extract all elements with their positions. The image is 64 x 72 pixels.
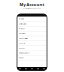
staticText: Devices bbox=[19, 47, 25, 49]
button[interactable]: Tab bbox=[17, 67, 23, 70]
button[interactable]: Security bbox=[17, 41, 47, 46]
staticText: About bbox=[19, 57, 23, 59]
button[interactable]: Tab bbox=[23, 67, 29, 70]
button[interactable]: About bbox=[17, 56, 47, 60]
button[interactable]: Profile bbox=[17, 17, 47, 22]
button[interactable]: Payment bbox=[17, 31, 47, 36]
button[interactable]: Devices bbox=[17, 46, 47, 51]
button[interactable]: Tab bbox=[35, 67, 41, 70]
button[interactable]: Notifications bbox=[17, 22, 47, 26]
staticText: Profile bbox=[19, 18, 24, 20]
staticText: My Account bbox=[19, 2, 44, 7]
button[interactable]: Subscription bbox=[17, 36, 47, 41]
staticText: Privacy bbox=[19, 28, 25, 30]
staticText: Security bbox=[19, 42, 25, 44]
button[interactable]: Tab bbox=[29, 67, 35, 70]
button[interactable]: Privacy bbox=[17, 26, 47, 31]
staticText: Subscription bbox=[19, 38, 28, 39]
button[interactable]: Tab bbox=[41, 67, 47, 70]
staticText: Notifications bbox=[19, 23, 27, 25]
button[interactable]: Help & Support bbox=[17, 51, 47, 55]
staticText: Help & Support bbox=[19, 52, 29, 54]
staticText: Profile, billing & preferences bbox=[22, 7, 41, 9]
staticText: Payment bbox=[19, 33, 25, 34]
